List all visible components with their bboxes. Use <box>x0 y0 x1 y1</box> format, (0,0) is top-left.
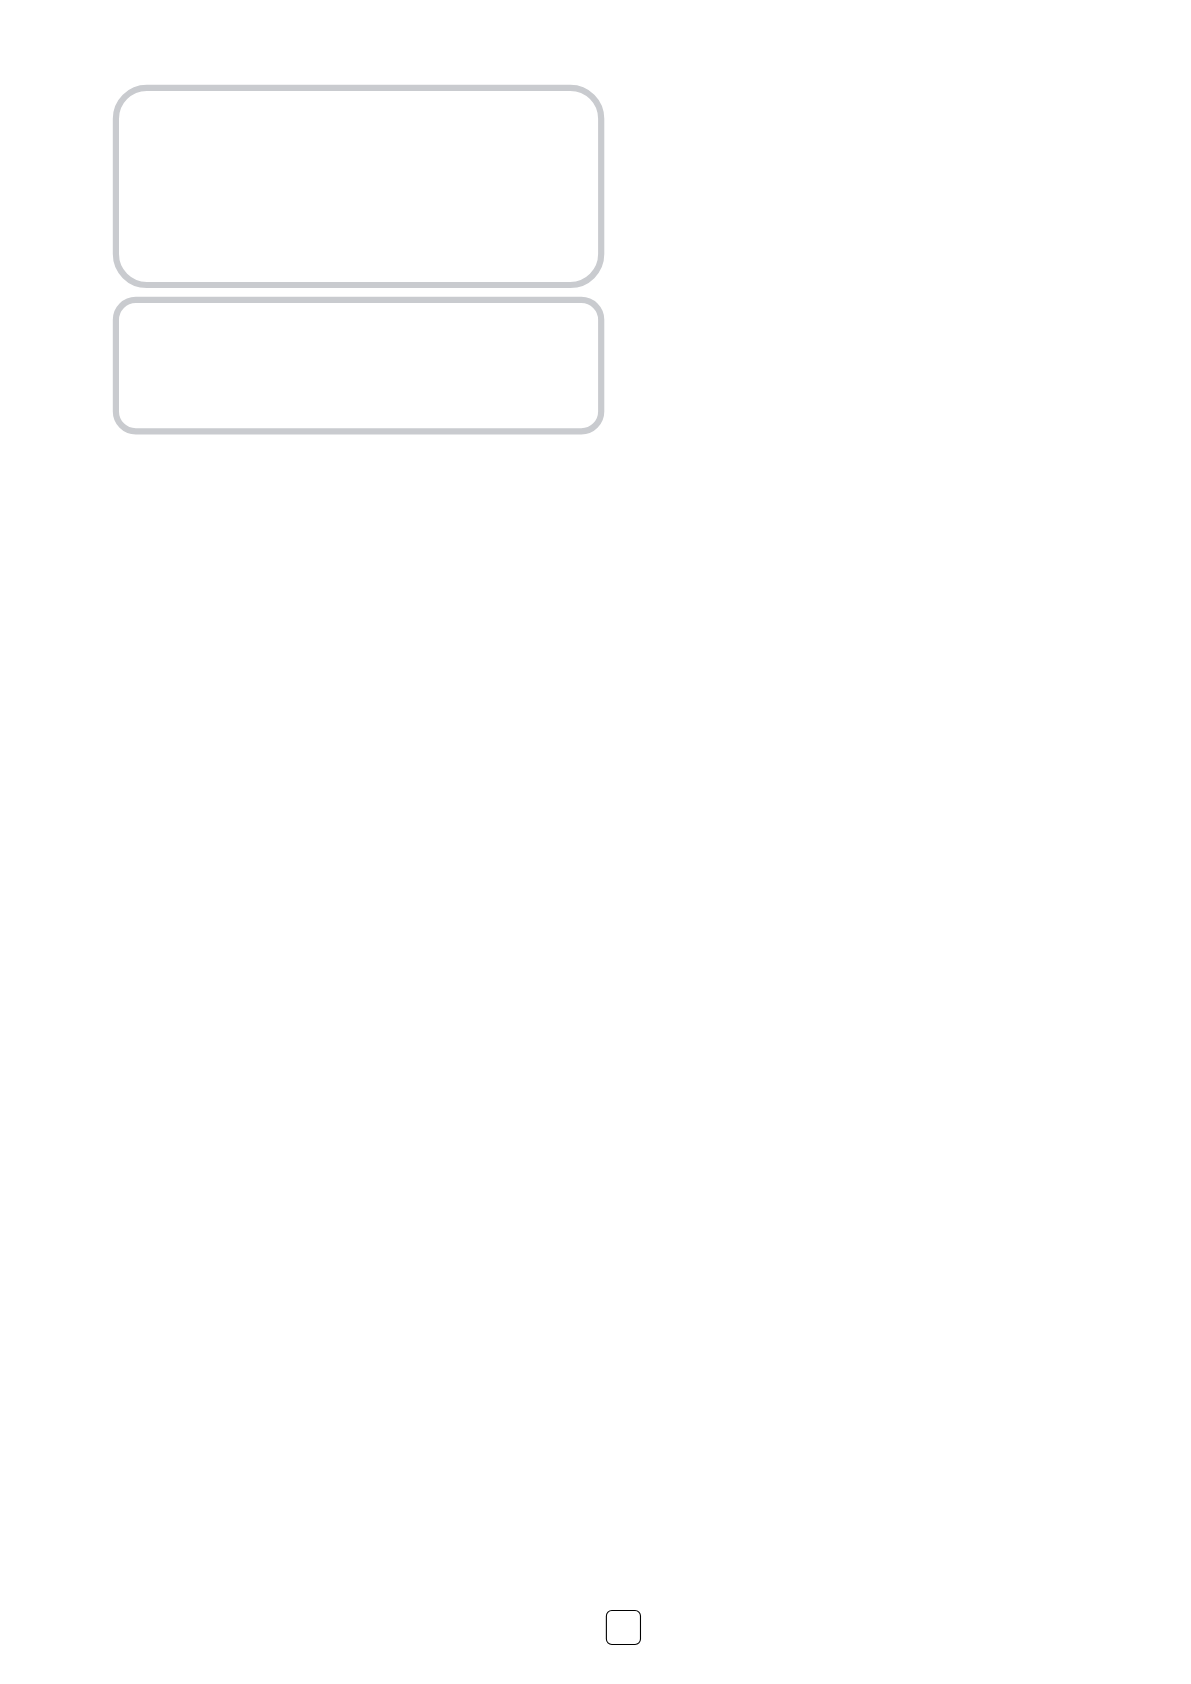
button[interactable]: Card <box>112 84 604 287</box>
button[interactable]: Card <box>112 296 604 434</box>
button[interactable]: Action <box>605 1609 640 1644</box>
